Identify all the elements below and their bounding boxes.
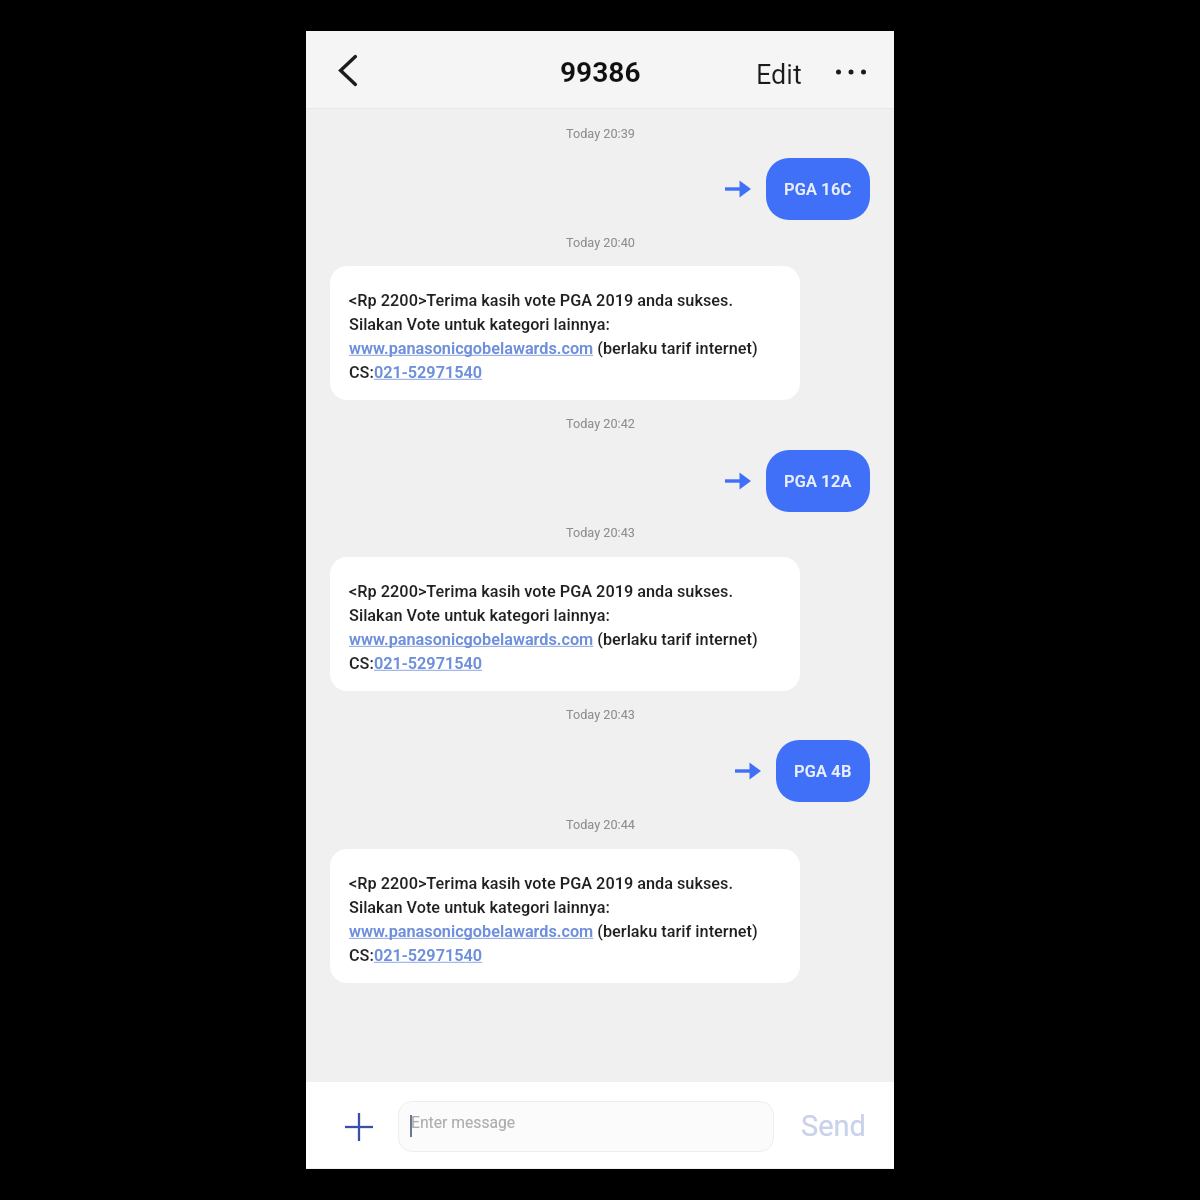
button[interactable]: Enter message	[398, 1101, 774, 1152]
button[interactable]: Send	[791, 1100, 875, 1152]
staticText: Send	[801, 1109, 866, 1143]
button[interactable]: <Rp 2200>Terima kasih vote PGA 2019 anda…	[330, 557, 800, 691]
staticText: PGA 16C	[784, 180, 852, 199]
button[interactable]: <Rp 2200>Terima kasih vote PGA 2019 anda…	[330, 266, 800, 400]
staticText: PGA 12A	[784, 472, 852, 491]
staticText: <Rp 2200>Terima kasih vote PGA 2019 anda…	[349, 582, 758, 673]
staticText: Today 20:43	[566, 707, 635, 722]
staticText: PGA 4B	[794, 762, 852, 781]
staticText: Edit	[756, 59, 802, 91]
staticText: 99386	[560, 56, 641, 89]
staticText: Today 20:40	[566, 235, 635, 250]
staticText: Enter message	[411, 1113, 516, 1131]
button[interactable]: More options	[827, 47, 875, 95]
button[interactable]: <Rp 2200>Terima kasih vote PGA 2019 anda…	[330, 849, 800, 983]
staticText: Today 20:43	[566, 525, 635, 540]
staticText: Today 20:39	[566, 126, 635, 141]
button[interactable]: PGA 12A	[766, 450, 870, 512]
button[interactable]: PGA 4B	[776, 740, 870, 802]
button[interactable]: PGA 16C	[766, 158, 870, 220]
button[interactable]: Add attachment	[333, 1101, 385, 1153]
staticText: <Rp 2200>Terima kasih vote PGA 2019 anda…	[349, 291, 758, 382]
button[interactable]: Back	[324, 46, 372, 94]
staticText: <Rp 2200>Terima kasih vote PGA 2019 anda…	[349, 874, 758, 965]
staticText: Today 20:44	[566, 817, 635, 832]
button[interactable]: Edit	[736, 49, 822, 101]
staticText: Today 20:42	[566, 416, 635, 431]
